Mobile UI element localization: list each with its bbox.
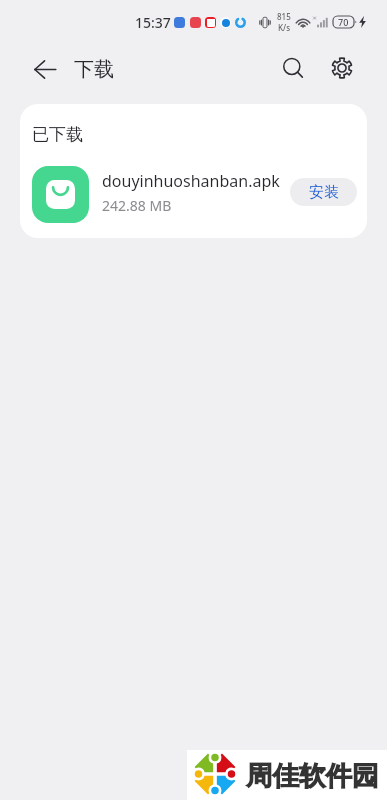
staticText: douyinhuoshanban.apk: [102, 170, 280, 192]
button[interactable]: Settings: [325, 51, 359, 85]
button[interactable]: douyinhuoshanban.apk: [20, 151, 367, 233]
button[interactable]: 安装: [290, 178, 357, 206]
staticText: 安装: [309, 183, 339, 202]
staticText: 周佳软件园: [246, 759, 379, 792]
staticText: 下载: [74, 57, 114, 82]
staticText: 815: [277, 11, 291, 22]
staticText: K/s: [278, 22, 291, 33]
button[interactable]: Search: [277, 52, 311, 86]
staticText: 70: [338, 16, 349, 28]
staticText: 已下载: [32, 124, 83, 145]
button[interactable]: Back: [30, 54, 60, 84]
staticText: 242.88 MB: [102, 196, 172, 215]
staticText: 15:37: [135, 13, 171, 32]
